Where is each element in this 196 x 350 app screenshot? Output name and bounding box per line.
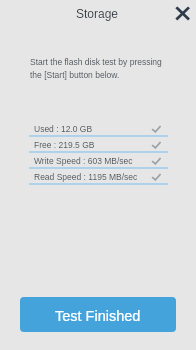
staticText: Free : 219.5 GB [34, 140, 95, 149]
staticText: Used : 12.0 GB [34, 124, 93, 133]
button[interactable]: Read Speed : 1195 MB/sec [0, 169, 196, 185]
button[interactable]: Used : 12.0 GB [0, 121, 196, 137]
staticText: Test Finished [55, 308, 141, 324]
staticText: Storage [76, 7, 119, 20]
staticText: Start the flash disk test by pressing th… [30, 57, 162, 80]
button[interactable]: Close [170, 1, 195, 26]
button[interactable]: Write Speed : 603 MB/sec [0, 153, 196, 169]
staticText: Write Speed : 603 MB/sec [34, 156, 133, 165]
staticText: Read Speed : 1195 MB/sec [34, 172, 138, 181]
button[interactable]: Test Finished [20, 297, 176, 332]
button[interactable]: Free : 219.5 GB [0, 137, 196, 153]
